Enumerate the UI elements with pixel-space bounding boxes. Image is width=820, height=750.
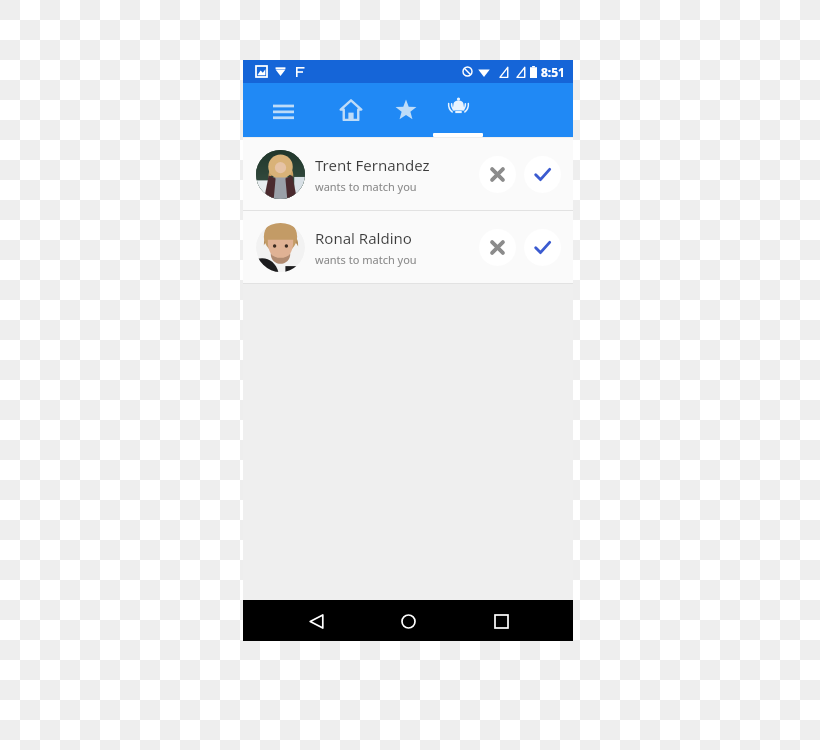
button[interactable]: Back bbox=[296, 601, 336, 641]
staticText: Ronal Raldino bbox=[315, 228, 412, 248]
button[interactable]: Recents bbox=[481, 601, 521, 641]
button[interactable]: Accept bbox=[524, 229, 561, 266]
button[interactable]: Favorites bbox=[378, 83, 434, 137]
button[interactable]: Ronal Raldino bbox=[243, 211, 573, 283]
button[interactable]: Decline bbox=[479, 229, 516, 266]
button[interactable]: Trent Fernandez bbox=[243, 138, 573, 210]
button[interactable]: Home bbox=[388, 601, 428, 641]
staticText: 8:51 bbox=[541, 64, 565, 80]
button[interactable]: Decline bbox=[479, 156, 516, 193]
button[interactable]: Accept bbox=[524, 156, 561, 193]
staticText: wants to match you bbox=[315, 252, 417, 267]
button[interactable]: Home bbox=[323, 83, 379, 137]
button[interactable]: Notifications bbox=[429, 83, 487, 137]
staticText: Trent Fernandez bbox=[315, 155, 430, 175]
button[interactable]: Menu bbox=[258, 83, 308, 137]
staticText: wants to match you bbox=[315, 179, 417, 194]
